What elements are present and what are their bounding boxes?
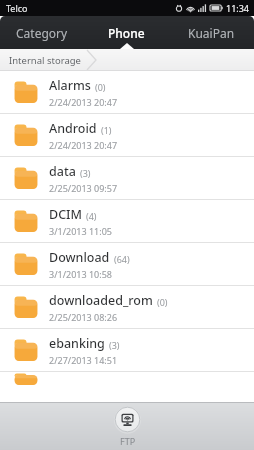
staticText: KuaiPan (188, 25, 235, 41)
staticText: 11:34 (226, 2, 250, 14)
staticText: ebanking (49, 335, 105, 352)
staticText: (4) (86, 210, 97, 222)
staticText: (3) (80, 167, 91, 179)
staticText: (64) (114, 253, 130, 265)
staticText: 2/27/2013 14:51 (49, 354, 118, 366)
staticText: Download (49, 249, 110, 266)
staticText: (0) (157, 296, 168, 308)
button[interactable]: Download (0, 243, 254, 285)
staticText: 3/1/2013 10:58 (49, 268, 112, 280)
staticText: (0) (95, 81, 106, 93)
staticText: Phone (108, 25, 145, 41)
button[interactable]: downloaded_rom (0, 286, 254, 328)
staticText: FTP (120, 435, 136, 447)
staticText: Android (49, 120, 97, 137)
button[interactable]: Android (0, 114, 254, 156)
staticText: 2/25/2013 09:57 (49, 182, 118, 194)
staticText: DCIM (49, 206, 82, 223)
staticText: downloaded_rom (49, 292, 153, 309)
button[interactable]: Alarms (0, 71, 254, 113)
button[interactable]: FTP (114, 406, 141, 447)
button[interactable]: Internal storage (0, 49, 254, 71)
staticText: Internal storage (9, 54, 81, 67)
staticText: (3) (109, 339, 120, 351)
staticText: 2/25/2013 08:26 (49, 311, 118, 323)
button[interactable]: Category (0, 16, 84, 49)
staticText: Alarms (49, 77, 91, 94)
staticText: Telco (6, 2, 28, 14)
staticText: data (49, 163, 76, 180)
button[interactable]: data (0, 157, 254, 199)
button[interactable]: KuaiPan (169, 16, 254, 49)
staticText: (1) (101, 124, 112, 136)
staticText: Category (16, 25, 68, 41)
button[interactable]: ebanking (0, 329, 254, 371)
staticText: 2/24/2013 20:47 (49, 139, 118, 151)
button[interactable]: DCIM (0, 200, 254, 242)
staticText: 3/1/2013 11:05 (49, 225, 112, 237)
button[interactable]: Phone (84, 16, 169, 49)
staticText: 2/24/2013 20:47 (49, 96, 118, 108)
